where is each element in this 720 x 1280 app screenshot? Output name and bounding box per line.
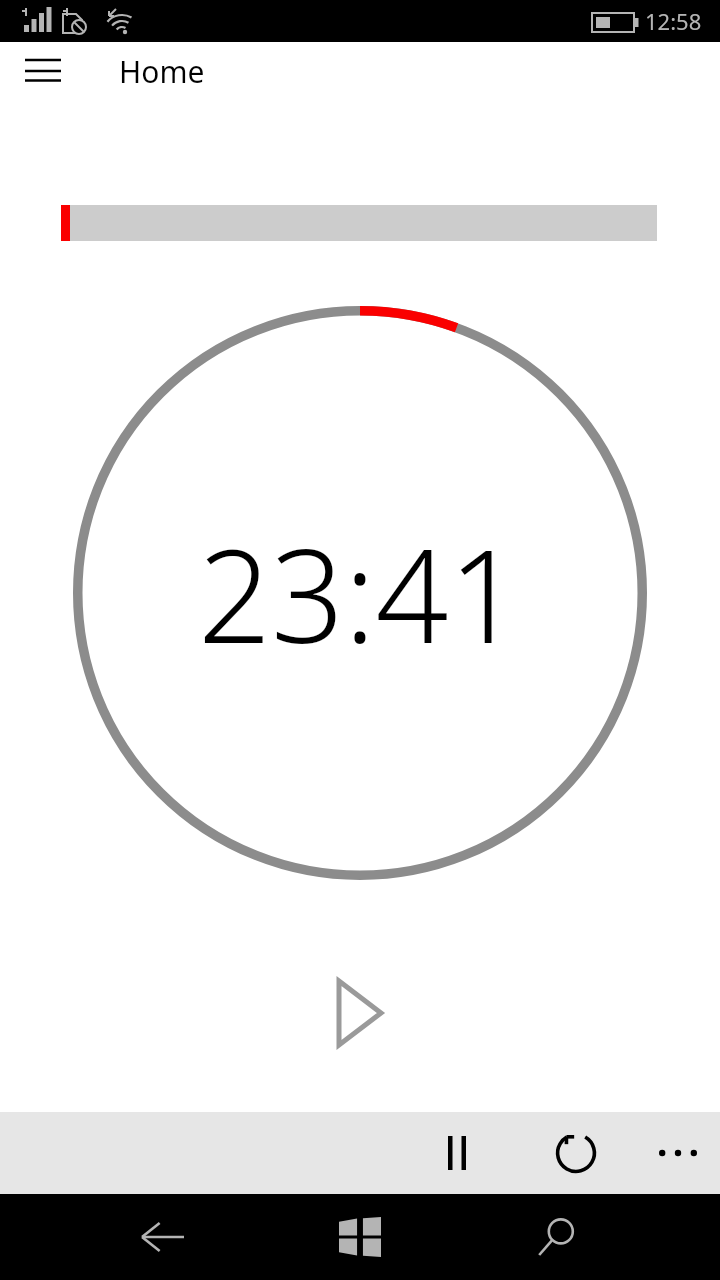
button[interactable]: Menu (12, 46, 74, 96)
button[interactable]: Pause (421, 1117, 493, 1189)
button[interactable] (61, 205, 657, 241)
staticText: Home (119, 51, 205, 92)
button[interactable]: Play (315, 968, 405, 1058)
button[interactable]: Back (123, 1197, 203, 1277)
button[interactable]: More options (642, 1117, 714, 1189)
button[interactable]: Start (320, 1197, 400, 1277)
button[interactable]: Search (516, 1197, 596, 1277)
staticText: 12:58 (645, 6, 702, 36)
staticText: 23:41 (198, 506, 522, 680)
button[interactable]: Reset (540, 1117, 612, 1189)
